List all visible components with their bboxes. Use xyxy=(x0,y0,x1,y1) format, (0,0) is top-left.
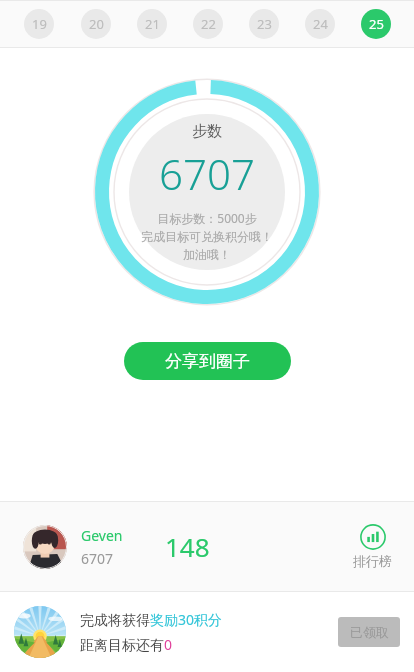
staticText: 21 xyxy=(145,15,160,33)
button[interactable]: Geven xyxy=(0,502,414,591)
staticText: 20 xyxy=(89,15,104,33)
staticText: 加油哦！ xyxy=(183,247,231,262)
button[interactable]: 25 xyxy=(361,9,391,39)
staticText: 25 xyxy=(369,15,384,33)
staticText: 分享到圈子 xyxy=(165,351,250,372)
staticText: 6707 xyxy=(81,549,114,568)
staticText: 已领取 xyxy=(350,624,389,640)
button[interactable]: 已领取 xyxy=(338,617,400,647)
button[interactable]: 21 xyxy=(137,9,167,39)
button[interactable]: 24 xyxy=(305,9,335,39)
staticText: Geven xyxy=(81,526,123,545)
staticText: 步数 xyxy=(192,122,222,141)
button[interactable]: 排行榜 xyxy=(349,520,396,573)
staticText: 完成目标可兑换积分哦！ xyxy=(141,229,273,244)
button[interactable]: 分享到圈子 xyxy=(124,342,291,380)
staticText: 23 xyxy=(257,15,272,33)
staticText: 24 xyxy=(313,15,328,33)
staticText: 目标步数：5000步 xyxy=(157,210,257,226)
staticText: 19 xyxy=(32,15,47,33)
button[interactable]: 20 xyxy=(81,9,111,39)
staticText: 148 xyxy=(165,529,210,564)
staticText: 距离目标还有0 xyxy=(80,635,173,654)
staticText: 排行榜 xyxy=(353,553,392,569)
button[interactable]: 22 xyxy=(193,9,223,39)
button[interactable]: 23 xyxy=(249,9,279,39)
staticText: 完成将获得奖励30积分 xyxy=(80,610,223,629)
staticText: 6707 xyxy=(159,145,255,202)
button[interactable]: 19 xyxy=(24,9,54,39)
staticText: 22 xyxy=(201,15,216,33)
